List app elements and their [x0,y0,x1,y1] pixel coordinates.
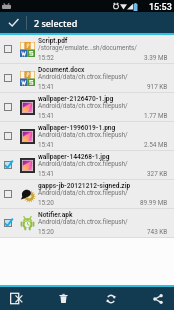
button[interactable]: Select [0,93,174,121]
staticText: 15:41 [38,141,54,149]
button[interactable]: Delete [42,287,84,310]
staticText: wallpaper-144268-1.jpg [38,153,110,161]
staticText: 15:52 [38,54,54,62]
button[interactable]: Select [0,151,174,179]
button[interactable]: Cut [0,287,37,310]
staticText: 327 KB [147,170,168,178]
staticText: wallpaper-2126470-1.jpg [38,95,114,103]
button[interactable]: Select [0,180,15,208]
staticText: gapps-jb-20121212-signed.zip [38,182,131,190]
staticText: 3.39 MB [144,54,168,62]
button[interactable]: Select [0,35,174,63]
button[interactable]: Select [0,209,15,237]
staticText: Android/data/ch.ctrox.filepush/ [38,102,128,110]
staticText: 743 KB [147,228,168,236]
button[interactable]: Select [0,93,15,121]
button[interactable]: Share [137,287,174,310]
staticText: Document.docx [38,66,85,74]
staticText: wallpaper-1996019-1.png [38,124,116,132]
staticText: /storage/emulate...sh/documents/ [38,44,137,52]
staticText: Android/data/ch.ctrox.filepush/ [38,218,128,226]
button[interactable]: Select [0,122,15,150]
button[interactable]: Copy [90,287,132,310]
button[interactable]: Select [0,122,174,150]
staticText: 89.99 MB [140,199,168,207]
button[interactable]: Select [0,209,174,237]
staticText: 15:53 [149,2,172,13]
staticText: 2 selected [34,17,78,29]
button[interactable]: Select [0,64,15,92]
staticText: 15:41 [38,83,54,91]
staticText: 15:41 [38,170,54,178]
staticText: Android/data/ch.ctrox.filepush/ [38,189,128,197]
staticText: Android/data/ch.ctrox.filepush/ [38,160,128,168]
staticText: Notifier.apk [38,211,73,219]
button[interactable]: Select [0,64,174,92]
staticText: 917 KB [147,83,168,91]
button[interactable]: Done [0,12,26,33]
button[interactable]: Select [0,35,15,63]
staticText: 2.54 MB [144,141,168,149]
staticText: Android/data/ch.ctrox.filepush/ [38,131,128,139]
staticText: 15:20 [38,228,54,236]
staticText: 15:41 [38,112,54,120]
button[interactable]: Select [0,151,15,179]
staticText: 1.77 MB [144,112,168,120]
staticText: Android/data/ch.ctrox.filepush/ [38,73,128,81]
button[interactable]: Select [0,180,174,208]
staticText: Script.pdf [38,37,68,45]
staticText: 15:20 [38,199,54,207]
button[interactable]: Done [0,12,174,33]
